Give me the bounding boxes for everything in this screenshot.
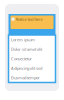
button[interactable]: Adipiscing elit sed <box>8 63 55 73</box>
button[interactable]: Consectetur <box>8 54 55 63</box>
staticText: Eiusmod tempor <box>11 75 40 80</box>
staticText: Notice text here <box>15 16 42 22</box>
staticText: Dolor sit amet elit <box>11 47 42 52</box>
button[interactable]: Eiusmod tempor <box>8 73 55 82</box>
button[interactable]: Dolor sit amet elit <box>8 44 55 54</box>
staticText: Adipiscing elit sed <box>11 66 42 71</box>
staticText: Consectetur <box>11 56 32 61</box>
button[interactable]: Lorem ipsum <box>8 35 55 44</box>
staticText: Lorem ipsum <box>11 37 35 42</box>
